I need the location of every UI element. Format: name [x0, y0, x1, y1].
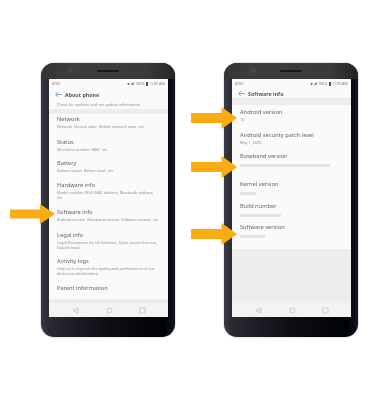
staticText: Android version	[240, 108, 283, 116]
button[interactable]: Network	[49, 115, 168, 128]
staticText: 11:00 AM	[332, 81, 348, 86]
staticText: May 1, 2020	[240, 140, 262, 145]
staticText: Model number, Wi-Fi MAC address, Bluetoo…	[57, 190, 154, 195]
button[interactable]: Back	[68, 303, 82, 317]
button[interactable]: Software info	[49, 208, 168, 221]
button[interactable]: Back	[251, 303, 265, 317]
staticText: AT&T	[235, 81, 244, 86]
staticText: Battery	[57, 159, 77, 167]
staticText: Legal info	[57, 231, 84, 239]
staticText: etc.	[57, 195, 64, 199]
other: Pointer arrow	[191, 156, 237, 178]
staticText: Android security patch level	[240, 131, 314, 139]
button[interactable]: Legal info	[49, 231, 168, 249]
staticText: Network, Service state, Mobile network s…	[57, 124, 145, 128]
button[interactable]: Build number	[232, 202, 351, 217]
staticText: Network	[57, 115, 80, 123]
staticText: Baseband version	[240, 152, 288, 160]
staticText: My phone number, IMEI, etc.	[57, 147, 108, 151]
button[interactable]: Baseband version	[232, 152, 351, 167]
button[interactable]: Back	[53, 89, 64, 100]
staticText: 100%	[135, 81, 145, 86]
staticText: Kernel version	[240, 180, 279, 188]
staticText: 100%	[318, 81, 328, 86]
staticText: Status	[57, 138, 74, 146]
staticText: AT&T	[52, 81, 61, 86]
staticText: About phone	[65, 91, 100, 98]
button[interactable]: Home	[102, 303, 116, 317]
button[interactable]: Android security patch level	[232, 131, 351, 146]
staticText: Software info	[57, 208, 93, 216]
staticText: Activity logs	[57, 257, 89, 265]
staticText: Patent information	[57, 284, 108, 292]
button[interactable]: Recents	[318, 303, 332, 317]
button[interactable]: Battery	[49, 159, 168, 172]
staticText: 11:00 AM	[149, 81, 165, 86]
staticText: Help us to improve the quality and perfo…	[57, 266, 155, 271]
button[interactable]: Software version	[232, 223, 351, 238]
staticText: device troubleshooting	[57, 271, 99, 275]
other: Pointer arrow	[191, 107, 237, 129]
staticText: Google legal	[57, 245, 80, 249]
button[interactable]: Patent information	[49, 284, 168, 293]
button[interactable]: Home	[285, 303, 299, 317]
staticText: Check for updates and see update informa…	[57, 102, 141, 107]
staticText: Software version	[240, 223, 285, 231]
button[interactable]: Status	[49, 138, 168, 151]
other: Pointer arrow	[191, 223, 237, 245]
staticText: Battery status, Battery level, etc.	[57, 168, 115, 172]
button[interactable]: Android version	[232, 108, 351, 123]
staticText: Software info	[248, 90, 284, 97]
other: Pointer arrow	[10, 204, 55, 224]
button[interactable]: Kernel version	[232, 180, 351, 195]
button[interactable]: Back	[236, 88, 247, 98]
button[interactable]: Recents	[135, 303, 149, 317]
staticText: Android version, Baseband version, Softw…	[57, 217, 160, 221]
staticText: Build number	[240, 202, 277, 210]
staticText: Legal Documents for LG Software, Open so…	[57, 240, 158, 245]
button[interactable]: Hardware info	[49, 181, 168, 199]
staticText: Hardware info	[57, 181, 96, 189]
button[interactable]: Activity logs	[49, 257, 168, 275]
staticText: 10	[240, 117, 245, 122]
